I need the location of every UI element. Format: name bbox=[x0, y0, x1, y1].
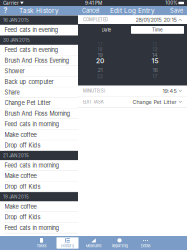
staticText: 12 bbox=[152, 42, 157, 47]
button[interactable]: Reporting bbox=[106, 236, 132, 250]
staticText: Feed cats in morning bbox=[4, 162, 59, 169]
staticText: 100% bbox=[165, 0, 177, 6]
staticText: COMPLETED bbox=[83, 17, 108, 22]
button[interactable]: Feed cats in morning bbox=[0, 160, 78, 171]
staticText: Save bbox=[170, 7, 183, 14]
staticText: Feed cats in morning bbox=[4, 121, 59, 128]
staticText: 22 bbox=[97, 74, 103, 79]
staticText: 14 bbox=[152, 52, 158, 58]
button[interactable]: Make coffee bbox=[0, 171, 78, 181]
staticText: 15 bbox=[151, 57, 158, 65]
button[interactable]: Feed cats in morning bbox=[0, 119, 78, 130]
button[interactable]: Drop off Kids bbox=[0, 140, 78, 151]
button[interactable]: Drop off Kids bbox=[0, 181, 78, 192]
staticText: 21 JAN 2015 bbox=[3, 153, 29, 158]
button[interactable]: Brush And Floss Morning bbox=[0, 108, 78, 119]
button[interactable]: Tasks bbox=[28, 236, 54, 250]
button[interactable]: Make coffee bbox=[0, 201, 78, 212]
staticText: 19:45 bbox=[162, 88, 176, 94]
button[interactable]: Feed cats in evening bbox=[0, 25, 78, 35]
staticText: 17 bbox=[98, 42, 102, 47]
staticText: Drop off Kids bbox=[4, 183, 40, 190]
staticText: Make coffee bbox=[4, 172, 36, 179]
staticText: 28/01/2015 20:15 bbox=[135, 16, 176, 23]
staticText: Back up computer bbox=[4, 78, 53, 85]
button[interactable]: Share bbox=[0, 87, 78, 98]
button[interactable]: Date bbox=[82, 26, 131, 34]
button[interactable]: History bbox=[54, 236, 80, 250]
button[interactable]: Feed cats in evening bbox=[0, 45, 78, 55]
staticText: Change Pet Litter bbox=[4, 99, 50, 106]
staticText: 19 JAN 2015 bbox=[3, 194, 29, 200]
staticText: 21 bbox=[97, 67, 102, 73]
staticText: 19 bbox=[97, 52, 102, 58]
staticText: Tasks bbox=[36, 243, 46, 248]
staticText: ? bbox=[3, 6, 7, 15]
staticText: Edit Log Entry bbox=[110, 7, 155, 15]
button[interactable]: Make coffee bbox=[0, 130, 78, 140]
button[interactable]: Back up computer bbox=[0, 77, 78, 87]
staticText: 16 JAN 2015 bbox=[3, 17, 29, 23]
staticText: MINUTE(S) bbox=[83, 88, 106, 93]
staticText: Cancel bbox=[82, 7, 99, 14]
staticText: 20 bbox=[96, 57, 104, 65]
staticText: Drop off Kids bbox=[4, 214, 40, 221]
staticText: Change Pet Litter bbox=[132, 99, 176, 105]
staticText: 9:41 PM bbox=[85, 0, 102, 6]
staticText: Feed cats in evening bbox=[4, 46, 58, 53]
staticText: Carrier bbox=[3, 0, 19, 6]
staticText: 17 bbox=[152, 74, 157, 79]
staticText: Extras bbox=[140, 243, 150, 248]
button[interactable]: Brush And Floss Evening bbox=[0, 55, 78, 66]
button[interactable]: Measures bbox=[80, 236, 106, 250]
button[interactable]: Cancel bbox=[78, 6, 103, 15]
staticText: Make coffee bbox=[4, 203, 36, 210]
staticText: Feed cats in morning bbox=[4, 224, 59, 231]
button[interactable]: Feed cats in morning bbox=[0, 223, 78, 233]
button[interactable]: Drop off Kids bbox=[0, 212, 78, 223]
button[interactable]: Help bbox=[0, 6, 11, 15]
button[interactable]: Time bbox=[131, 26, 184, 34]
staticText: Brush And Floss Morning bbox=[4, 110, 70, 117]
staticText: 13 bbox=[152, 47, 157, 52]
button[interactable]: MINUTE(S) bbox=[78, 86, 187, 97]
staticText: Feed cats in evening bbox=[4, 26, 58, 33]
staticText: Brush And Floss Evening bbox=[4, 57, 69, 64]
button[interactable]: COMPLETED bbox=[78, 15, 187, 24]
staticText: History bbox=[61, 243, 74, 248]
button[interactable]: Change Pet Litter bbox=[0, 98, 78, 108]
staticText: Task History bbox=[19, 7, 59, 15]
staticText: Measures bbox=[85, 243, 101, 248]
staticText: Time bbox=[152, 27, 163, 33]
staticText: Drop off Kids bbox=[4, 142, 40, 149]
button[interactable]: Save bbox=[166, 6, 187, 15]
button[interactable]: EDIT TASK bbox=[78, 97, 187, 108]
staticText: EDIT TASK bbox=[83, 99, 104, 104]
staticText: Date bbox=[101, 27, 111, 33]
staticText: Shower bbox=[4, 68, 24, 75]
staticText: Make coffee bbox=[4, 131, 36, 138]
staticText: 30 JAN 2015 bbox=[3, 37, 30, 43]
staticText: Share bbox=[4, 89, 19, 96]
button[interactable]: Shower bbox=[0, 66, 78, 77]
button[interactable]: Extras bbox=[132, 236, 158, 250]
staticText: Reporting bbox=[111, 243, 127, 248]
staticText: 16 bbox=[152, 67, 157, 73]
staticText: 18 bbox=[97, 47, 102, 52]
